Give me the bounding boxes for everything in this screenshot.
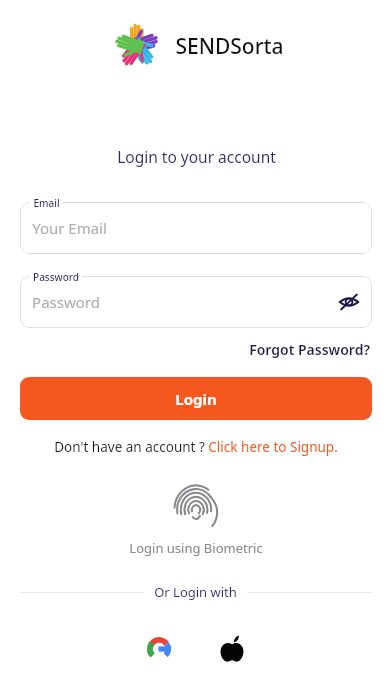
staticText: Password [33, 270, 79, 284]
button[interactable]: Sign in with Apple [210, 627, 254, 671]
button[interactable]: Sign in with Google [138, 628, 180, 670]
staticText: Password [32, 292, 100, 312]
button[interactable]: Login [20, 377, 372, 420]
staticText: Login [175, 389, 217, 409]
button[interactable]: Toggle password visibility [334, 287, 364, 317]
staticText: Your Email [32, 218, 107, 238]
button[interactable] [20, 202, 372, 254]
button[interactable]: Don't have an account ? Click here to Si… [50, 436, 342, 458]
button[interactable]: Login using Biometric [119, 480, 273, 561]
staticText: Forgot Password? [249, 340, 370, 359]
button[interactable] [20, 276, 372, 328]
staticText: Email [33, 196, 60, 210]
staticText: Or Login with [154, 583, 237, 601]
button[interactable]: Forgot Password? [247, 338, 372, 361]
staticText: Login to your account [117, 146, 276, 167]
staticText: Login using Biometric [129, 539, 263, 557]
staticText: SENDSorta [175, 32, 284, 61]
other: Login using Biometric [173, 484, 219, 530]
staticText: Don't have an account ? Click here to Si… [54, 438, 338, 456]
